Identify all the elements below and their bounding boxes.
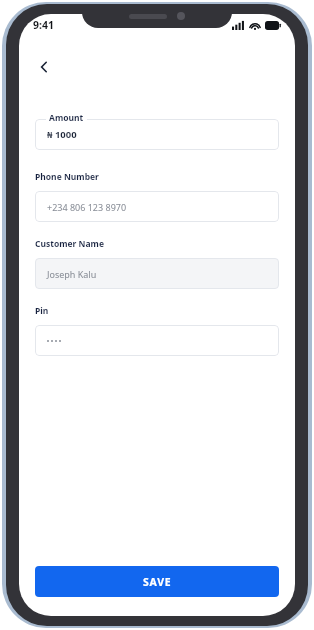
button[interactable]: Amount — [35, 112, 279, 150]
button[interactable]: Back — [27, 50, 61, 84]
button[interactable]: Phone Number — [35, 171, 279, 222]
staticText: Joseph Kalu — [47, 268, 97, 280]
button[interactable]: Pin — [35, 305, 279, 356]
staticText: ₦ 1000 — [47, 128, 77, 141]
staticText: 9:41 — [33, 18, 54, 32]
staticText: Pin — [35, 305, 49, 317]
staticText: Phone Number — [35, 171, 99, 183]
staticText: Amount — [49, 112, 84, 124]
staticText: Customer Name — [35, 238, 104, 250]
staticText: +234 806 123 8970 — [47, 201, 127, 213]
button[interactable]: SAVE — [35, 566, 279, 597]
button[interactable]: Customer Name — [35, 238, 279, 289]
staticText: SAVE — [143, 575, 172, 589]
